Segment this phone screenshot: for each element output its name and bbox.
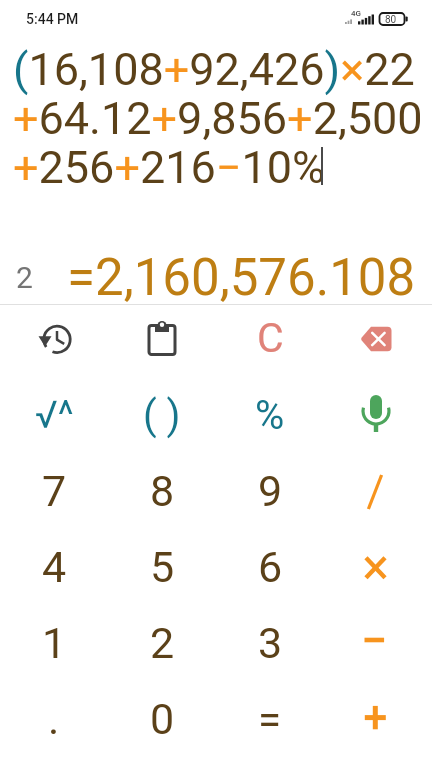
button[interactable]: 0 — [108, 681, 216, 757]
button[interactable] — [324, 681, 432, 757]
button[interactable]: 7 — [0, 453, 108, 529]
button[interactable]: = — [216, 681, 324, 757]
button[interactable]: C — [216, 301, 324, 377]
button[interactable] — [324, 301, 432, 377]
staticText: 80 — [385, 14, 397, 26]
staticText: = — [258, 695, 282, 744]
button[interactable]: 9 — [216, 453, 324, 529]
staticText: 4G — [351, 9, 361, 18]
staticText: 4 — [42, 542, 67, 592]
staticText: (16,108+92,426)×22 +64.12+9,856+2,500 +2… — [13, 43, 423, 194]
staticText: 1 — [42, 618, 67, 668]
staticText: 5:44 PM — [26, 11, 79, 27]
staticText: 2 — [16, 260, 33, 295]
button[interactable] — [324, 377, 432, 453]
staticText: . — [48, 694, 60, 744]
staticText: C — [257, 314, 284, 362]
button[interactable]: 4 — [0, 529, 108, 605]
staticText: 9 — [258, 466, 283, 516]
staticText: % — [255, 392, 285, 439]
staticText: 0 — [150, 694, 175, 744]
button[interactable]: 5 — [108, 529, 216, 605]
staticText: √^ — [35, 393, 74, 438]
button[interactable]: 6 — [216, 529, 324, 605]
button[interactable]: 8 — [108, 453, 216, 529]
button[interactable]: % — [216, 377, 324, 453]
button[interactable]: . — [0, 681, 108, 757]
staticText: =2,160,576.108 — [67, 248, 416, 308]
button[interactable]: 3 — [216, 605, 324, 681]
staticText: 5 — [150, 542, 175, 592]
staticText: ( ) — [143, 392, 181, 439]
staticText: 7 — [42, 466, 67, 516]
button[interactable]: 2 — [108, 605, 216, 681]
button[interactable] — [324, 529, 432, 605]
button[interactable]: √^ — [0, 377, 108, 453]
button[interactable] — [0, 301, 108, 377]
button[interactable] — [324, 453, 432, 529]
staticText: 3 — [258, 618, 283, 668]
button[interactable]: ( ) — [108, 377, 216, 453]
staticText: 8 — [150, 466, 175, 516]
button[interactable] — [324, 605, 432, 681]
button[interactable]: 1 — [0, 605, 108, 681]
button[interactable] — [108, 301, 216, 377]
staticText: 2 — [150, 618, 175, 668]
staticText: 6 — [258, 542, 283, 592]
